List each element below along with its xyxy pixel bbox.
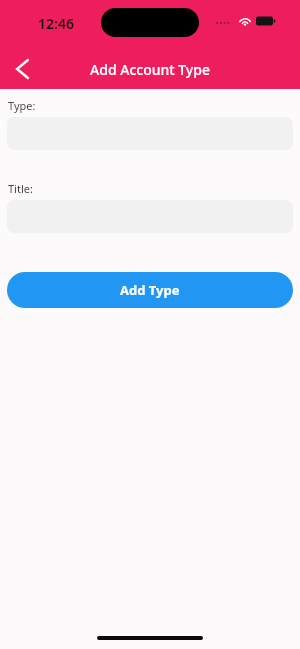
button[interactable]: Add Type [7,272,293,308]
staticText: Type: [8,98,36,113]
staticText: 12:46 [38,14,74,33]
staticText: Add Type [120,281,180,299]
staticText: Add Account Type [0,60,300,79]
staticText: Title: [8,181,33,196]
button[interactable]: Back [6,53,38,85]
